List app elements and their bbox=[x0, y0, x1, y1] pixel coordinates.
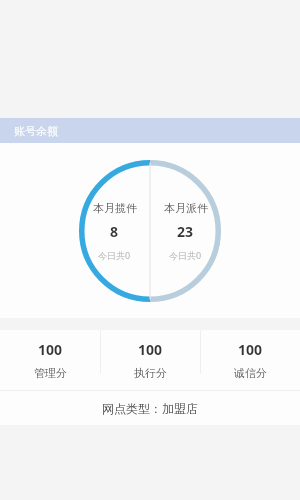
staticText: 8 bbox=[110, 222, 119, 241]
staticText: 100 bbox=[38, 340, 63, 359]
button[interactable]: 100 bbox=[0, 330, 100, 390]
staticText: 100 bbox=[138, 340, 163, 359]
staticText: 诚信分 bbox=[234, 366, 267, 380]
staticText: 账号余额 bbox=[14, 124, 58, 138]
button[interactable]: 100 bbox=[101, 330, 200, 390]
staticText: 本月揽件 bbox=[93, 201, 137, 215]
staticText: 执行分 bbox=[134, 366, 167, 380]
button[interactable]: 100 bbox=[201, 330, 300, 390]
button[interactable]: 账号余额 bbox=[0, 118, 300, 143]
staticText: 今日共0 bbox=[169, 249, 202, 261]
staticText: 今日共0 bbox=[98, 249, 131, 261]
button[interactable]: 本月揽件 bbox=[79, 160, 221, 302]
staticText: 本月派件 bbox=[164, 201, 208, 215]
staticText: 100 bbox=[238, 340, 263, 359]
button[interactable]: 网点类型：加盟店 bbox=[0, 391, 300, 425]
staticText: 23 bbox=[177, 222, 194, 241]
staticText: 管理分 bbox=[34, 366, 67, 380]
staticText: 网点类型：加盟店 bbox=[102, 401, 198, 416]
